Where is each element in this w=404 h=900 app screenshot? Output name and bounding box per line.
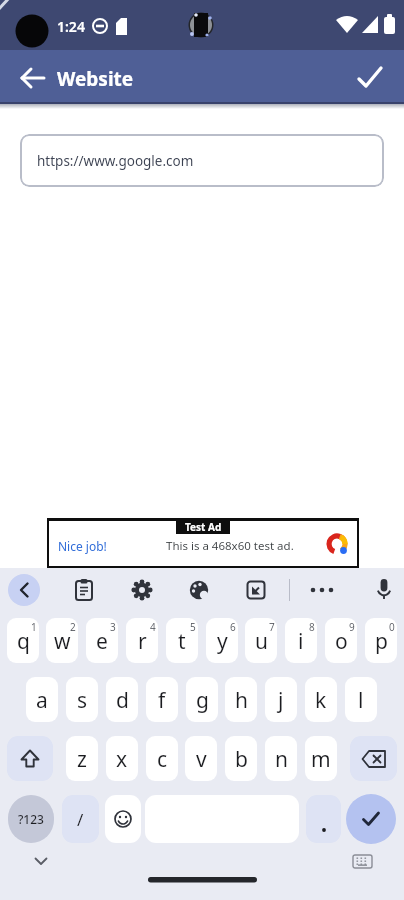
staticText: b [235, 745, 248, 774]
button[interactable]: q [7, 618, 39, 663]
button[interactable]: l [345, 677, 377, 722]
button[interactable] [352, 62, 388, 94]
button[interactable] [47, 518, 359, 568]
button[interactable]: e [86, 618, 118, 663]
button[interactable] [72, 578, 96, 602]
button[interactable] [372, 577, 396, 603]
staticText: g [196, 686, 209, 715]
staticText: 1 [31, 620, 37, 634]
staticText: Website [57, 66, 134, 92]
button[interactable] [8, 574, 40, 606]
button[interactable]: k [305, 677, 337, 722]
staticText: i [298, 627, 304, 656]
button[interactable]: d [106, 677, 138, 722]
button[interactable]: u [245, 618, 277, 663]
staticText: 3 [110, 620, 116, 634]
button[interactable]: s [66, 677, 98, 722]
button[interactable]: n [265, 736, 297, 781]
staticText: https://www.google.com [37, 152, 194, 170]
staticText: 2 [70, 620, 76, 634]
button[interactable]: w [46, 618, 78, 663]
staticText: w [54, 627, 71, 656]
staticText: d [116, 686, 129, 715]
staticText: ?123 [18, 811, 44, 827]
button[interactable]: g [186, 677, 218, 722]
button[interactable] [28, 850, 54, 874]
button[interactable]: r [126, 618, 158, 663]
staticText: p [375, 627, 388, 656]
button[interactable] [7, 736, 53, 781]
staticText: k [315, 686, 327, 715]
staticText: y [217, 627, 228, 656]
button[interactable] [348, 850, 378, 874]
button[interactable] [350, 736, 397, 781]
staticText: 4 [150, 620, 156, 634]
staticText: z [77, 745, 87, 774]
staticText: Test Ad [185, 520, 222, 534]
staticText: 9 [349, 620, 355, 634]
button[interactable] [244, 578, 268, 602]
button[interactable]: ?123 [8, 795, 54, 843]
button[interactable] [130, 578, 154, 602]
button[interactable]: m [305, 736, 337, 781]
staticText: 8 [309, 620, 315, 634]
staticText: j [278, 686, 284, 715]
button[interactable]: v [185, 736, 217, 781]
button[interactable]: / [62, 795, 99, 843]
button[interactable]: p [365, 618, 397, 663]
staticText: a [36, 686, 48, 715]
staticText: 6 [230, 620, 236, 634]
staticText: r [138, 627, 147, 656]
staticText: 5 [190, 620, 196, 634]
staticText: This is a 468x60 test ad. [166, 538, 294, 552]
staticText: 7 [269, 620, 275, 634]
staticText: q [17, 627, 30, 656]
staticText: u [255, 627, 268, 656]
button[interactable] [306, 578, 338, 602]
staticText: c [157, 745, 168, 774]
button[interactable] [10, 60, 54, 96]
button[interactable]: t [166, 618, 198, 663]
button[interactable] [105, 795, 141, 843]
button[interactable]: x [106, 736, 138, 781]
button[interactable]: o [325, 618, 357, 663]
staticText: Nice job! [58, 538, 107, 554]
button[interactable]: y [206, 618, 238, 663]
staticText: v [196, 745, 207, 774]
staticText: e [96, 627, 108, 656]
button[interactable] [187, 578, 211, 602]
staticText: 1:24 [57, 17, 85, 36]
button[interactable]: c [146, 736, 178, 781]
button[interactable]: h [225, 677, 257, 722]
staticText: / [77, 808, 84, 831]
staticText: t [178, 627, 186, 656]
staticText: n [275, 745, 288, 774]
button[interactable]: j [265, 677, 297, 722]
staticText: l [358, 686, 364, 715]
staticText: f [158, 686, 166, 715]
button[interactable]: https://www.google.com [20, 134, 384, 187]
button[interactable]: f [146, 677, 178, 722]
staticText: m [311, 745, 331, 774]
button[interactable]: a [26, 677, 58, 722]
staticText: s [77, 686, 88, 715]
button[interactable]: i [285, 618, 317, 663]
staticText: o [335, 627, 348, 656]
button[interactable] [306, 795, 341, 843]
staticText: x [116, 745, 128, 774]
button[interactable] [346, 794, 396, 844]
button[interactable]: z [66, 736, 98, 781]
staticText: 0 [389, 620, 395, 634]
staticText: h [235, 686, 248, 715]
button[interactable]: b [225, 736, 257, 781]
